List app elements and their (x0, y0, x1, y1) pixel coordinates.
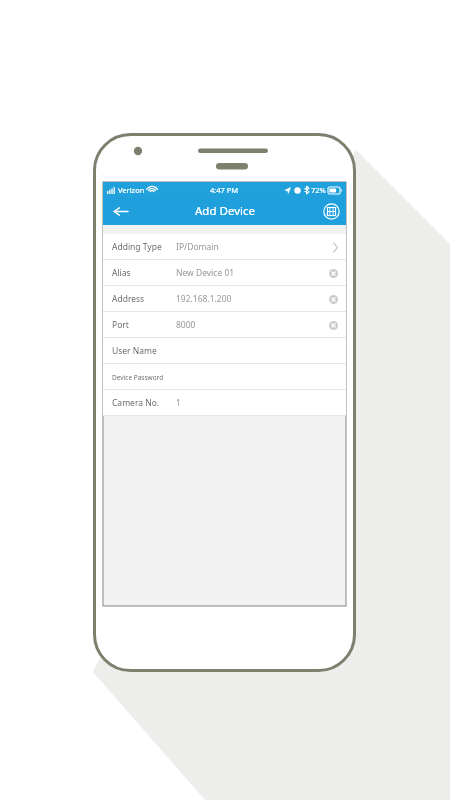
staticText: 1 (176, 397, 181, 409)
staticText: 4:47 PM (210, 185, 239, 195)
button[interactable]: Camera No. (103, 390, 346, 416)
button[interactable]: Device Password (103, 364, 346, 390)
staticText: 8000 (176, 319, 196, 331)
staticText: 72% (311, 185, 326, 195)
staticText: Add Device (195, 203, 255, 219)
staticText: Verizon (118, 185, 145, 195)
staticText: Address (112, 293, 145, 305)
button[interactable]: Scan QR code (316, 197, 346, 225)
staticText: User Name (112, 345, 157, 357)
button[interactable]: Back (103, 197, 137, 225)
staticText: Adding Type (112, 241, 162, 253)
staticText: Alias (112, 267, 131, 279)
button[interactable]: User Name (103, 338, 346, 364)
staticText: New Device 01 (176, 267, 235, 279)
staticText: Camera No. (112, 397, 160, 409)
button[interactable]: Address (103, 286, 346, 312)
button[interactable]: Alias (103, 260, 346, 286)
button[interactable]: Port (103, 312, 346, 338)
staticText: Device Password (112, 373, 164, 382)
staticText: IP/Domain (176, 241, 219, 253)
staticText: 192.168.1.200 (176, 293, 232, 305)
button[interactable]: Adding Type (103, 234, 346, 260)
staticText: Port (112, 319, 129, 331)
